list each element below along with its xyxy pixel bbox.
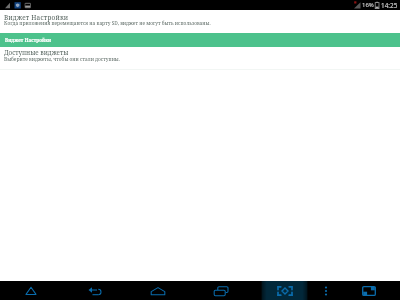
- staticText: Доступные виджеты: [4, 48, 69, 56]
- button[interactable]: More options: [295, 281, 337, 300]
- button[interactable]: Up: [0, 281, 62, 300]
- button[interactable]: Recents: [188, 281, 251, 300]
- button[interactable]: Fullscreen: [251, 281, 295, 300]
- staticText: Выберите виджеты, чтобы они стали доступ…: [4, 56, 121, 63]
- staticText: Виджет Настройки: [4, 13, 69, 22]
- staticText: Виджет Настройки: [5, 37, 52, 43]
- button[interactable]: Back: [62, 281, 125, 300]
- staticText: 16%: [362, 1, 374, 9]
- staticText: 14:25: [381, 1, 398, 10]
- staticText: Когда приложения перемещаются на карту S…: [4, 20, 211, 27]
- button[interactable]: Виджет Настройки: [0, 33, 400, 47]
- button[interactable]: Home: [125, 281, 188, 300]
- button[interactable]: Multi window: [337, 281, 400, 300]
